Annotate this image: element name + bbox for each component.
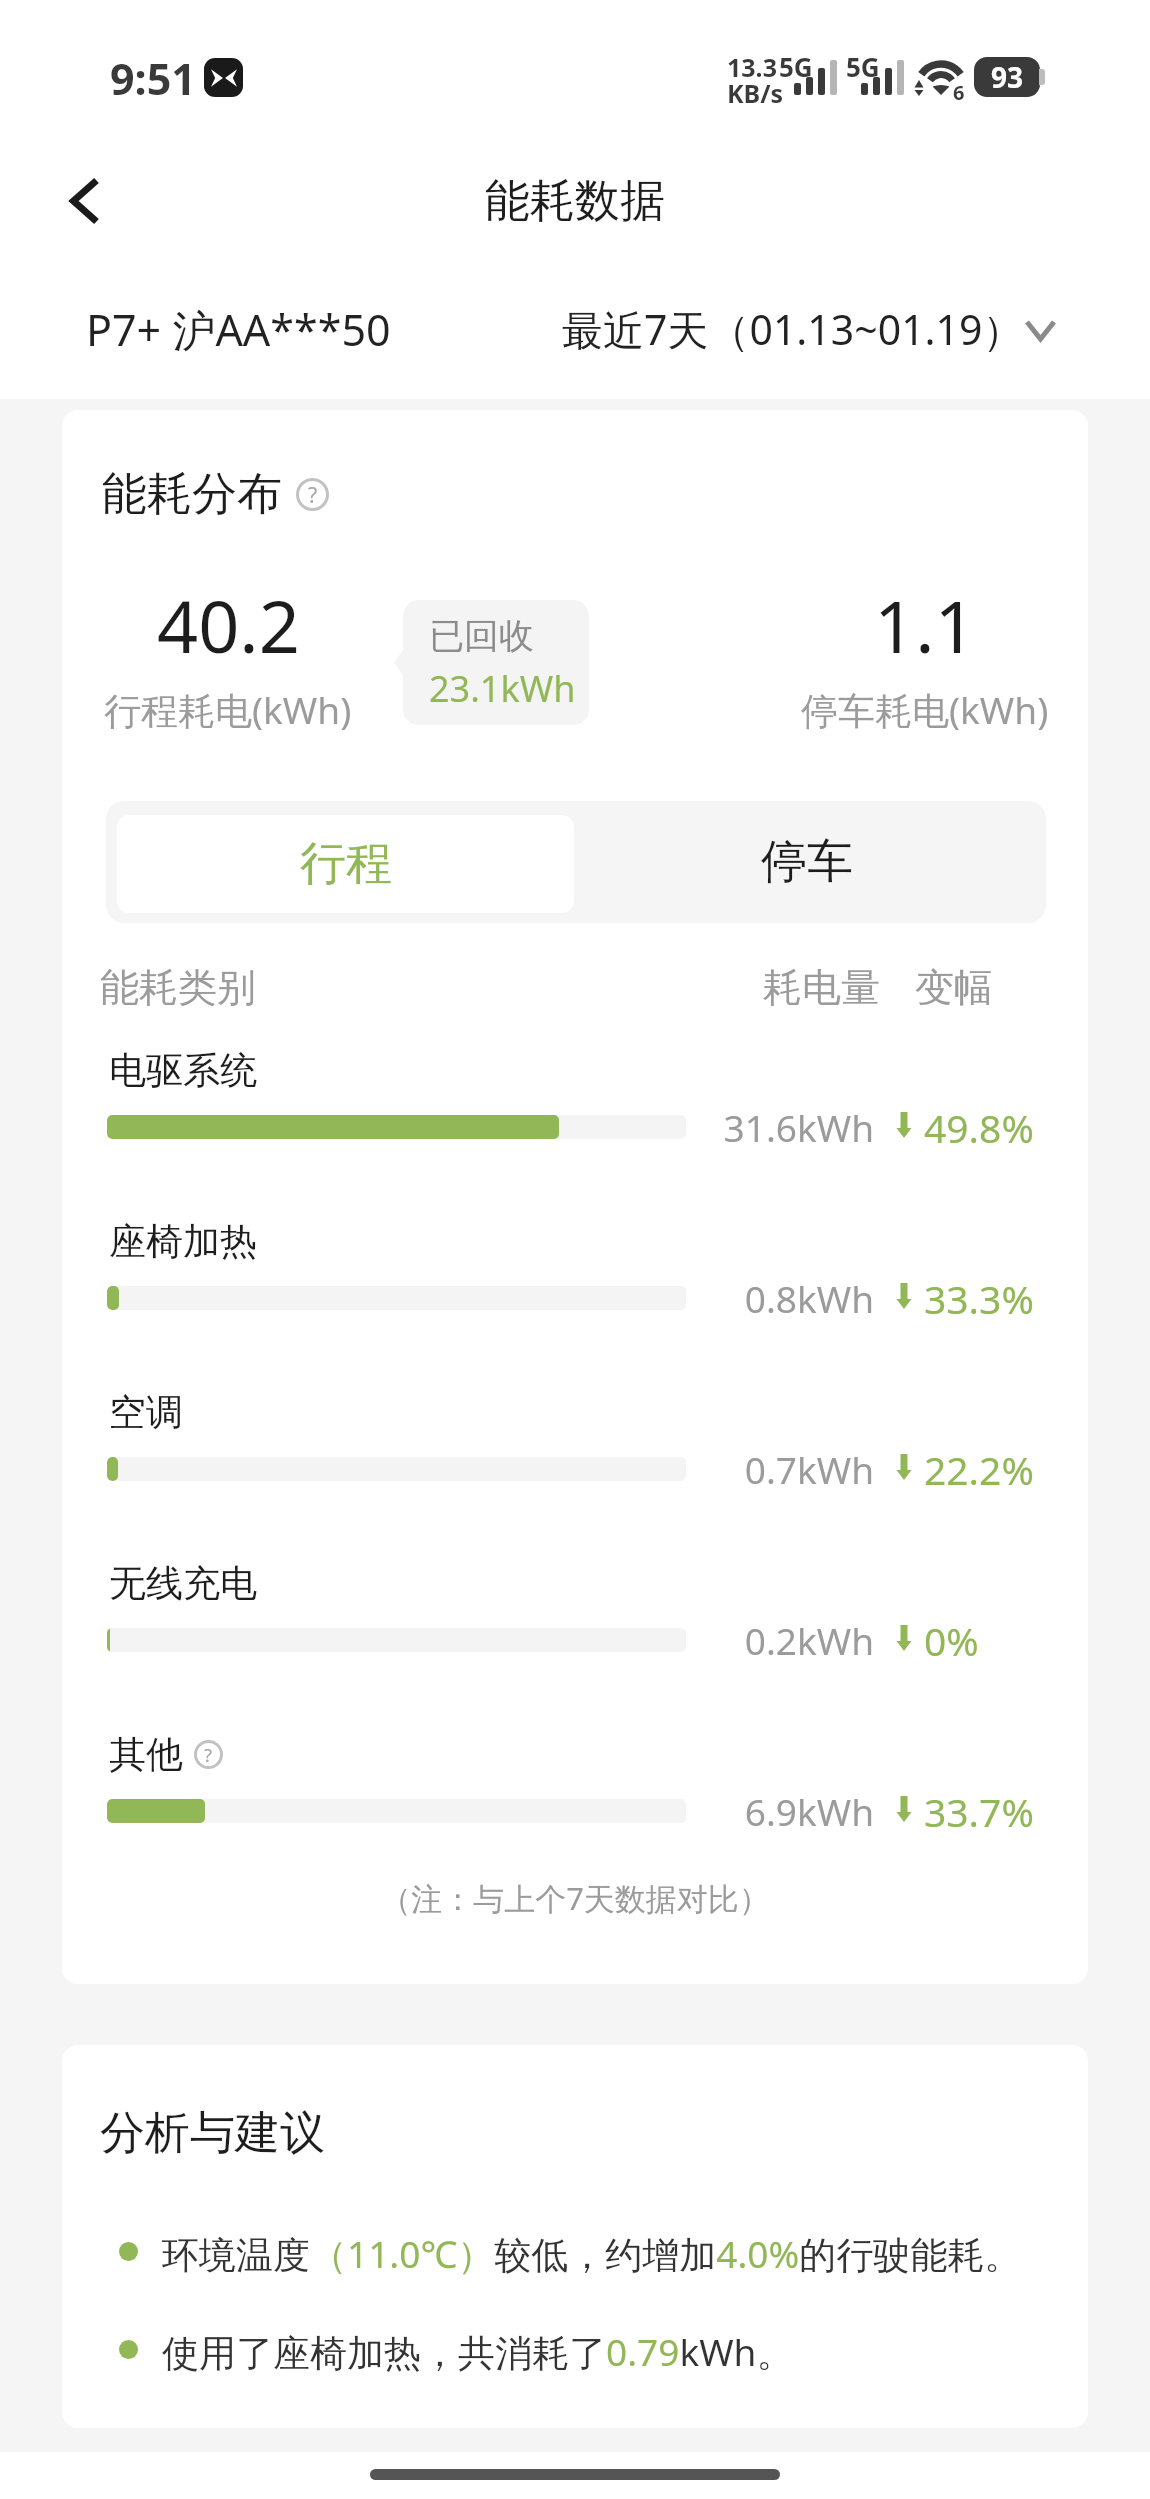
staticText: 行程耗电(kWh) xyxy=(104,684,352,735)
staticText: 分析与建议 xyxy=(100,2105,325,2162)
staticText: 6.9kWh xyxy=(600,1786,874,1836)
button[interactable]: 行程 xyxy=(117,815,574,913)
staticText: 使用了座椅加热，共消耗了0.79kWh。 xyxy=(162,2326,794,2377)
staticText: 0.2kWh xyxy=(600,1615,874,1665)
staticText: （注：与上个7天数据对比） xyxy=(62,1877,1088,1919)
button[interactable]: 最近7天（01.13~01.19） xyxy=(556,292,1066,364)
staticText: 空调 xyxy=(109,1389,183,1436)
button[interactable]: 座椅加热 xyxy=(92,1202,1058,1342)
staticText: ? xyxy=(308,480,318,509)
staticText: 其他 xyxy=(109,1731,183,1778)
staticText: 环境温度（11.0℃）较低，约增加4.0%的行驶能耗。 xyxy=(162,2228,1022,2279)
button[interactable]: 停车 xyxy=(572,801,1042,923)
staticText: 6 xyxy=(953,79,965,106)
staticText: 0% xyxy=(924,1614,979,1667)
staticText: 22.2% xyxy=(924,1443,1034,1496)
staticText: 停车耗电(kWh) xyxy=(801,684,1049,735)
staticText: 33.3% xyxy=(924,1272,1034,1325)
staticText: 无线充电 xyxy=(109,1560,257,1607)
button[interactable]: About other consumption xyxy=(194,1740,223,1769)
staticText: 能耗分布 xyxy=(102,466,282,523)
staticText: 13.3 xyxy=(727,50,777,84)
staticText: 0.7kWh xyxy=(600,1444,874,1494)
staticText: 电驱系统 xyxy=(109,1047,257,1094)
button[interactable]: Back xyxy=(50,166,120,236)
button[interactable]: P7+ 沪AA***50 xyxy=(64,292,464,364)
staticText: 23.1kWh xyxy=(429,664,576,713)
staticText: 1.1 xyxy=(874,576,976,674)
button[interactable]: 其他 xyxy=(92,1715,1058,1855)
staticText: 耗电量 xyxy=(763,963,880,1012)
button[interactable]: About energy distribution xyxy=(296,478,329,511)
staticText: 能耗数据 xyxy=(0,173,1150,230)
button[interactable]: 电驱系统 xyxy=(92,1031,1058,1171)
staticText: 31.6kWh xyxy=(600,1102,874,1152)
staticText: 40.2 xyxy=(157,576,300,674)
staticText: 变幅 xyxy=(915,963,993,1012)
staticText: 5G xyxy=(846,49,880,84)
staticText: 能耗类别 xyxy=(100,963,256,1012)
staticText: 座椅加热 xyxy=(109,1218,257,1265)
button[interactable]: 空调 xyxy=(92,1373,1058,1513)
staticText: P7+ 沪AA***50 xyxy=(86,300,391,359)
staticText: 停车 xyxy=(761,833,853,891)
staticText: 5G xyxy=(779,49,813,84)
button[interactable]: 无线充电 xyxy=(92,1544,1058,1684)
staticText: 33.7% xyxy=(924,1785,1034,1838)
staticText: 行程 xyxy=(300,835,392,893)
staticText: 已回收 xyxy=(429,614,534,658)
staticText: 93 xyxy=(991,58,1024,96)
staticText: KB/s xyxy=(727,76,784,110)
staticText: 49.8% xyxy=(924,1101,1034,1154)
staticText: 0.8kWh xyxy=(600,1273,874,1323)
staticText: ? xyxy=(204,1742,213,1767)
staticText: 最近7天（01.13~01.19） xyxy=(562,301,1024,357)
staticText: 9:51 xyxy=(110,49,196,108)
